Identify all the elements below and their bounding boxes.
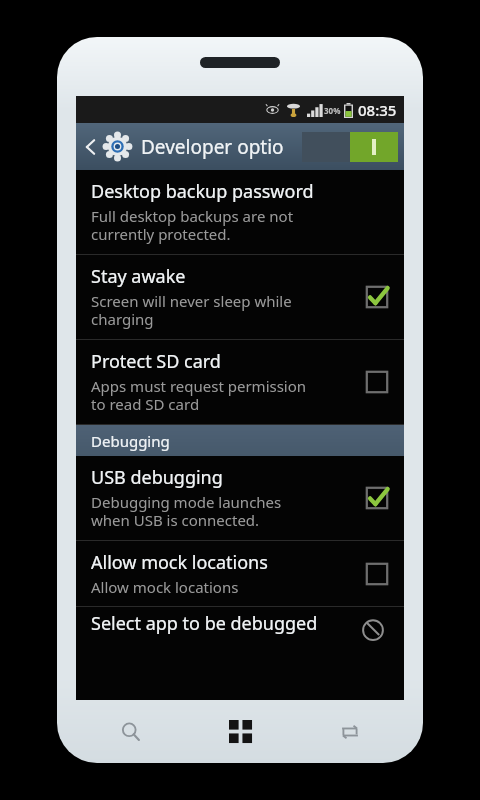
staticText: Select app to be debugged [91, 611, 318, 635]
button[interactable]: Recents [295, 700, 404, 763]
other: Checked [362, 483, 392, 513]
staticText: Full desktop backups are not currently p… [91, 206, 294, 245]
staticText: Apps must request permission to read SD … [91, 376, 307, 415]
staticText: 30% [324, 105, 341, 116]
button[interactable]: Allow mock locations [76, 541, 404, 607]
button[interactable]: Select app to be debugged [76, 607, 404, 635]
button[interactable]: Desktop backup password [76, 170, 404, 255]
button[interactable]: USB debugging [76, 456, 404, 541]
staticText: Developer optio [141, 134, 284, 160]
button[interactable]: Developer options on [302, 132, 398, 162]
button[interactable]: Search [76, 700, 186, 763]
button[interactable]: Navigate up [76, 129, 133, 164]
other: Unchecked [362, 559, 392, 589]
staticText: 08:35 [358, 100, 397, 120]
staticText: Allow mock locations [91, 577, 239, 597]
staticText: Debugging [91, 431, 170, 451]
other: Unchecked [362, 367, 392, 397]
staticText: Protect SD card [91, 349, 221, 374]
staticText: USB debugging [91, 465, 223, 490]
staticText: Debugging mode launches when USB is conn… [91, 492, 282, 531]
staticText: Desktop backup password [91, 179, 314, 204]
staticText: Screen will never sleep while charging [91, 291, 292, 330]
button[interactable]: Protect SD card [76, 340, 404, 425]
button[interactable]: Home [186, 700, 295, 763]
button[interactable]: Stay awake [76, 255, 404, 340]
staticText: Stay awake [91, 264, 186, 289]
other: Checked [362, 282, 392, 312]
staticText: Allow mock locations [91, 550, 268, 575]
